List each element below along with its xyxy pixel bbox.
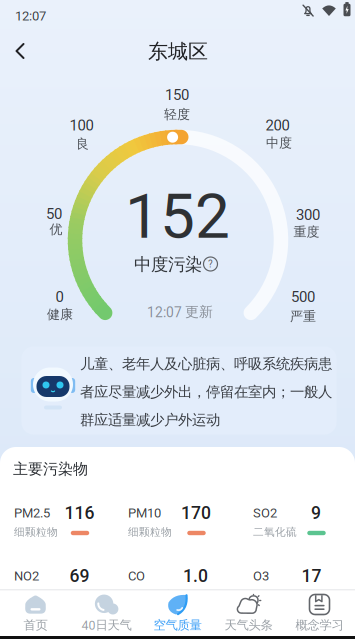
staticText: 1.0 — [183, 566, 208, 586]
button[interactable]: ? — [202, 256, 218, 272]
button[interactable]: 首页 — [0, 590, 71, 636]
staticText: 优 — [49, 221, 62, 238]
staticText: 17 — [301, 566, 321, 586]
staticText: CO — [128, 568, 145, 584]
staticText: 细颗粒物 — [128, 525, 172, 539]
staticText: SO2 — [253, 505, 277, 521]
staticText: O3 — [253, 568, 269, 584]
staticText: 100 — [69, 117, 93, 134]
staticText: 300 — [296, 206, 320, 224]
staticText: 者应尽量减少外出，停留在室内；一般人 — [80, 383, 332, 401]
staticText: 中度 — [266, 135, 292, 151]
staticText: 群应适量减少户外运动 — [80, 411, 220, 429]
staticText: 170 — [181, 503, 211, 523]
staticText: 首页 — [23, 617, 47, 633]
staticText: 空气质量 — [153, 617, 201, 633]
button[interactable]: 概念学习 — [284, 590, 355, 636]
staticText: 主要污染物 — [13, 460, 88, 478]
staticText: 12:07 更新 — [147, 303, 213, 321]
staticText: 中度污染 — [134, 254, 202, 275]
staticText: 细颗粒物 — [14, 525, 58, 539]
staticText: 116 — [64, 503, 94, 523]
staticText: NO2 — [14, 568, 39, 584]
staticText: PM10 — [128, 505, 161, 521]
staticText: PM2.5 — [14, 505, 50, 521]
staticText: 良 — [76, 136, 89, 152]
staticText: 二氧化硫 — [253, 525, 297, 539]
staticText: 严重 — [290, 308, 316, 325]
staticText: 9 — [311, 503, 321, 523]
staticText: 东城区 — [148, 39, 208, 64]
button[interactable] — [9, 39, 33, 63]
button[interactable]: 40日天气 — [71, 590, 142, 636]
staticText: 重度 — [293, 224, 319, 240]
staticText: 0 — [55, 288, 63, 306]
staticText: 臭氧 — [253, 588, 275, 602]
staticText: 健康 — [47, 306, 73, 323]
staticText: 一氧化碳 — [128, 588, 172, 602]
staticText: 轻度 — [164, 106, 190, 123]
staticText: 二氧化氮 — [14, 588, 58, 602]
staticText: 50 — [46, 205, 62, 223]
staticText: 69 — [69, 566, 89, 586]
staticText: 152 — [125, 180, 230, 253]
staticText: 天气头条 — [224, 617, 272, 633]
staticText: 500 — [291, 288, 315, 306]
button[interactable]: 空气质量 — [142, 590, 213, 636]
staticText: 概念学习 — [295, 617, 343, 633]
staticText: 150 — [165, 86, 189, 104]
staticText: 200 — [265, 117, 289, 134]
staticText: ? — [208, 258, 213, 270]
staticText: 儿童、老年人及心脏病、呼吸系统疾病患 — [80, 355, 332, 373]
button[interactable]: 天气头条 — [213, 590, 284, 636]
staticText: 40日天气 — [81, 617, 131, 633]
staticText: 12:07 — [15, 8, 46, 24]
